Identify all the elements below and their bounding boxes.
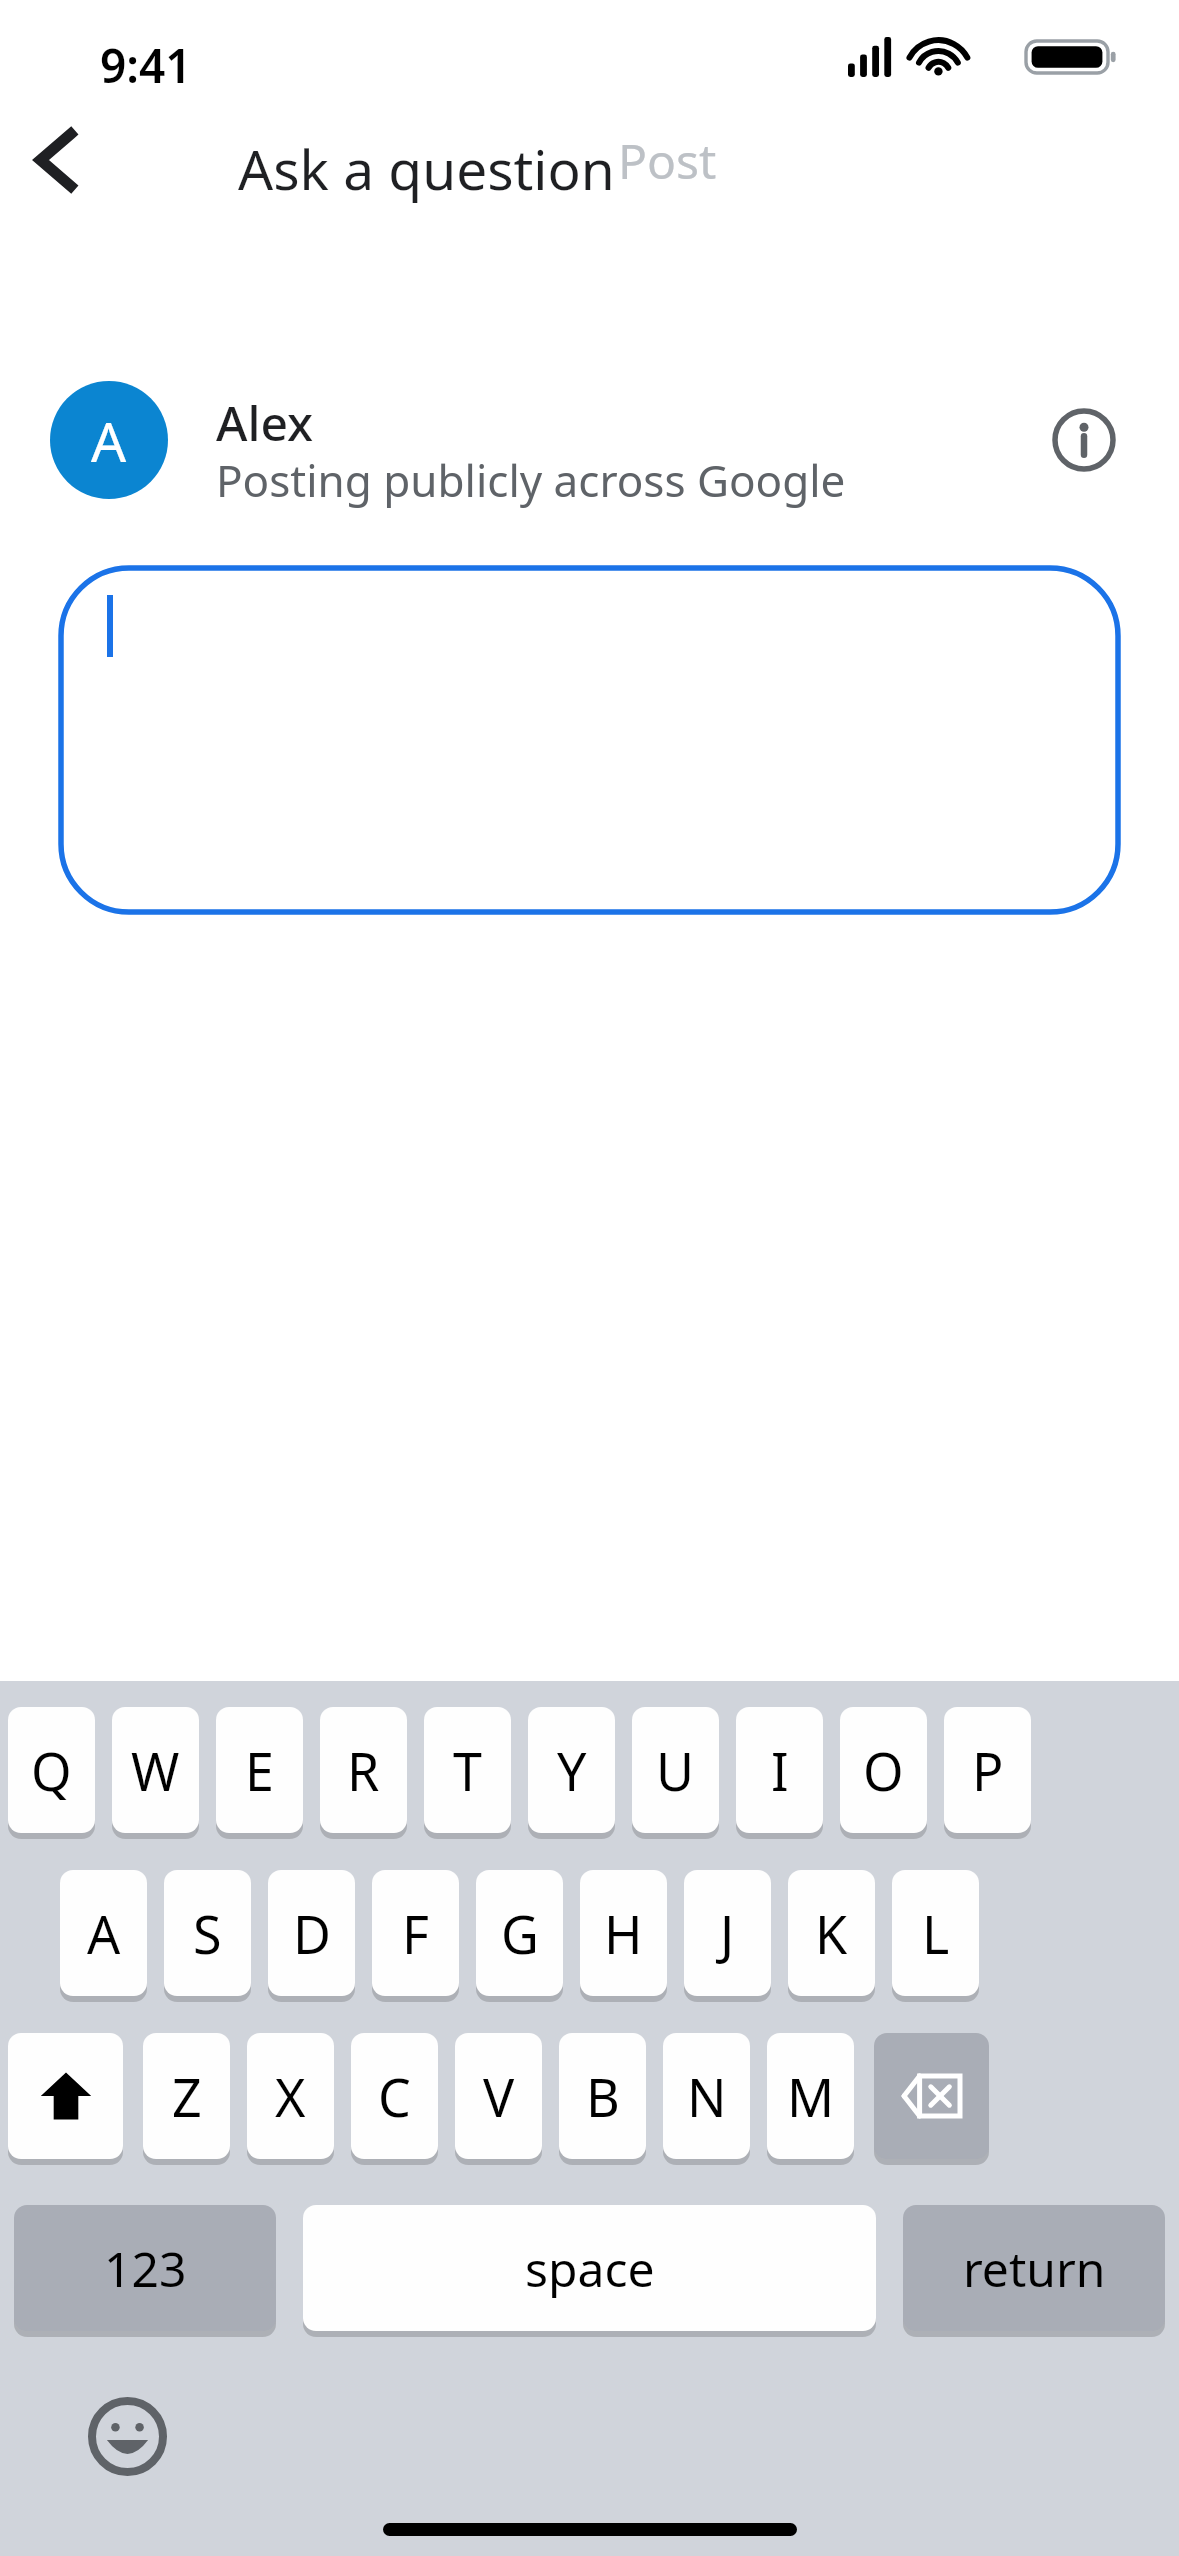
button[interactable]: A [50,381,168,499]
button[interactable]: U [632,1707,719,1833]
staticText: V [483,2061,515,2132]
staticText: N [687,2061,727,2132]
button[interactable]: A [60,1870,147,1996]
staticText: I [771,1735,789,1806]
button[interactable]: Post [608,118,726,202]
staticText: Z [172,2061,202,2132]
staticText: R [347,1735,380,1806]
staticText: S [193,1898,222,1969]
button[interactable]: Shift [8,2033,123,2159]
button[interactable]: M [767,2033,854,2159]
staticText: E [245,1735,274,1806]
button[interactable]: L [892,1870,979,1996]
button[interactable]: E [216,1707,303,1833]
button[interactable]: W [112,1707,199,1833]
button[interactable]: Info [1032,388,1136,492]
button[interactable]: return [903,2205,1165,2331]
staticText: Posting publicly across Google [216,450,846,510]
staticText: space [525,2236,655,2301]
staticText: O [863,1735,904,1806]
staticText: A [91,403,127,478]
staticText: Y [557,1735,587,1806]
button[interactable]: F [372,1870,459,1996]
staticText: D [293,1898,331,1969]
button[interactable]: I [736,1707,823,1833]
staticText: G [501,1898,539,1969]
button[interactable]: R [320,1707,407,1833]
button[interactable]: C [351,2033,438,2159]
staticText: T [453,1735,482,1806]
button[interactable]: H [580,1870,667,1996]
staticText: W [131,1735,180,1806]
staticText: K [815,1898,848,1969]
button[interactable]: X [247,2033,334,2159]
button[interactable]: Back [0,112,112,208]
staticText: 9:41 [100,34,192,97]
button[interactable]: Q [8,1707,95,1833]
button[interactable]: D [268,1870,355,1996]
button[interactable]: Y [528,1707,615,1833]
staticText: Ask a question [238,131,615,206]
button[interactable]: V [455,2033,542,2159]
staticText: M [787,2061,835,2132]
staticText: Alex [216,390,314,455]
button[interactable]: P [944,1707,1031,1833]
button[interactable]: J [684,1870,771,1996]
button[interactable]: space [303,2205,876,2331]
staticText: J [720,1898,735,1969]
button[interactable]: S [164,1870,251,1996]
staticText: X [275,2061,306,2132]
button[interactable]: Backspace [874,2033,989,2159]
staticText: C [378,2061,411,2132]
staticText: P [972,1735,1004,1806]
button[interactable]: 123 [14,2205,276,2331]
button[interactable]: B [559,2033,646,2159]
staticText: L [922,1898,950,1969]
staticText: 123 [104,2236,187,2301]
button[interactable]: Emoji [78,2387,176,2485]
button[interactable]: N [663,2033,750,2159]
staticText: U [656,1735,695,1806]
button[interactable]: O [840,1707,927,1833]
staticText: F [402,1898,429,1969]
staticText: Post [618,128,717,193]
button[interactable]: Z [143,2033,230,2159]
button[interactable]: T [424,1707,511,1833]
button[interactable] [58,565,1121,915]
staticText: B [586,2061,620,2132]
staticText: Q [31,1735,72,1806]
button[interactable]: K [788,1870,875,1996]
staticText: H [604,1898,643,1969]
staticText: A [87,1898,121,1969]
button[interactable]: G [476,1870,563,1996]
staticText: return [963,2236,1106,2301]
